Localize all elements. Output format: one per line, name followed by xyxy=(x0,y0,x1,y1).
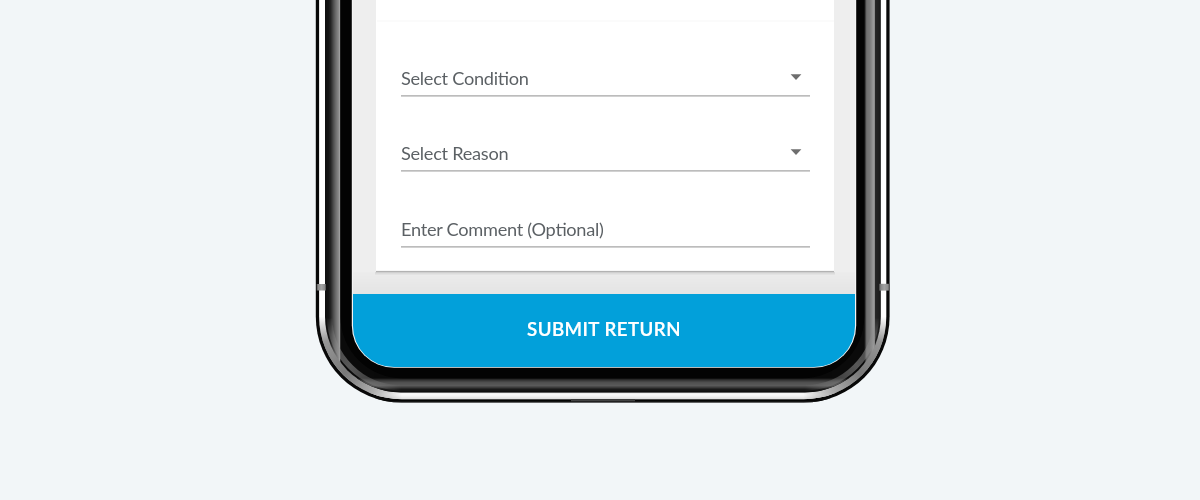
button[interactable]: Select Condition xyxy=(401,51,810,97)
staticText: Enter Comment (Optional) xyxy=(401,218,604,240)
button[interactable]: Select Reason xyxy=(401,126,810,172)
other: Open Select Reason dropdown xyxy=(790,149,802,155)
staticText: Select Reason xyxy=(401,142,509,164)
button[interactable]: SUBMIT RETURN xyxy=(353,294,855,367)
button[interactable]: Enter Comment (Optional) xyxy=(401,202,810,248)
staticText: SUBMIT RETURN xyxy=(527,318,681,340)
other: Open Select Condition dropdown xyxy=(790,74,802,80)
staticText: Select Condition xyxy=(401,67,529,89)
